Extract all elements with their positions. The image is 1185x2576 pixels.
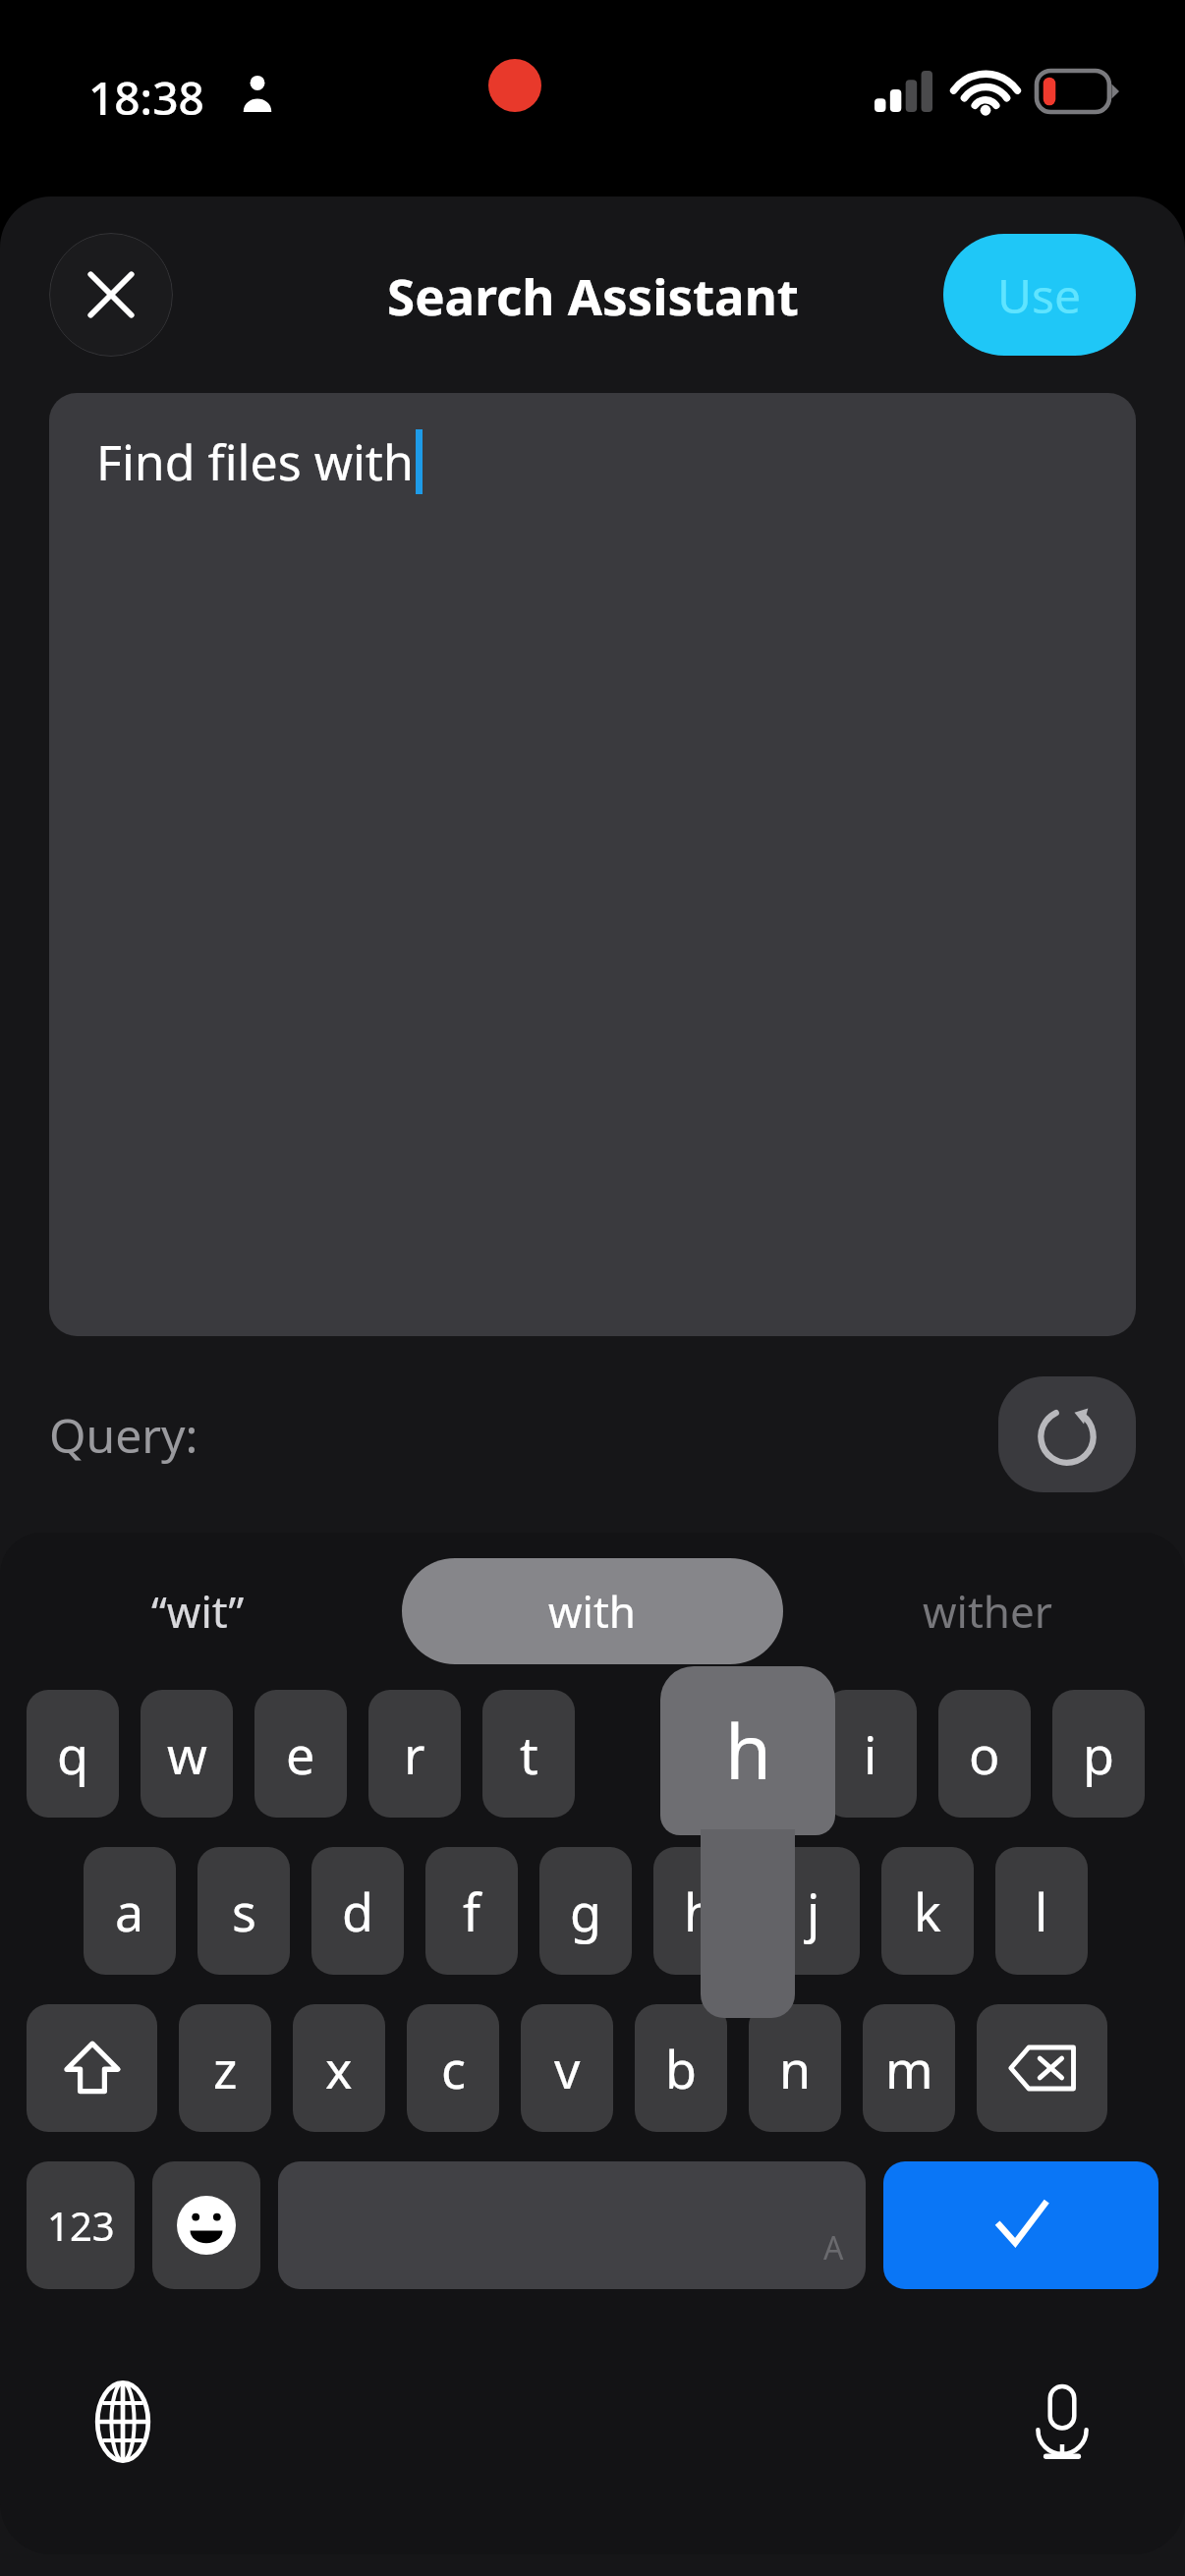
staticText: h xyxy=(684,1876,716,1946)
button[interactable]: s xyxy=(197,1847,290,1975)
button[interactable]: j xyxy=(767,1847,860,1975)
button[interactable]: Use xyxy=(943,234,1136,356)
button[interactable]: p xyxy=(1052,1690,1145,1818)
staticText: “wit” xyxy=(151,1582,245,1641)
button[interactable]: i xyxy=(824,1690,917,1818)
button[interactable]: 123 xyxy=(27,2161,135,2289)
staticText: b xyxy=(665,2034,697,2103)
staticText: f xyxy=(463,1876,480,1946)
button[interactable]: Emoji xyxy=(152,2161,260,2289)
staticText: d xyxy=(342,1876,373,1946)
button[interactable] xyxy=(596,1690,689,1818)
button[interactable]: “wit” xyxy=(0,1533,395,1690)
staticText: Query: xyxy=(49,1403,198,1467)
button[interactable]: Change language xyxy=(69,2368,177,2476)
button[interactable]: r xyxy=(368,1690,461,1818)
staticText: e xyxy=(286,1719,315,1789)
staticText: 18:38 xyxy=(88,67,204,129)
staticText: s xyxy=(232,1876,256,1946)
staticText: l xyxy=(1035,1876,1048,1946)
staticText: x xyxy=(325,2034,353,2103)
button[interactable]: z xyxy=(179,2004,271,2132)
button[interactable]: n xyxy=(749,2004,841,2132)
staticText: i xyxy=(864,1719,877,1789)
button[interactable]: x xyxy=(293,2004,385,2132)
button[interactable]: Key xyxy=(977,2004,1107,2132)
staticText: w xyxy=(167,1719,207,1789)
button[interactable]: Enter xyxy=(883,2161,1158,2289)
button[interactable]: Find files with xyxy=(49,393,1136,1336)
staticText: m xyxy=(885,2034,933,2103)
button[interactable]: Key xyxy=(27,2004,157,2132)
staticText: g xyxy=(570,1876,601,1946)
staticText: z xyxy=(213,2034,238,2103)
staticText: Find files with xyxy=(96,428,414,495)
button[interactable]: Space xyxy=(278,2161,866,2289)
staticText: n xyxy=(779,2034,812,2103)
button[interactable]: a xyxy=(84,1847,176,1975)
button[interactable]: o xyxy=(938,1690,1031,1818)
button[interactable]: l xyxy=(995,1847,1088,1975)
button[interactable]: g xyxy=(539,1847,632,1975)
button[interactable]: k xyxy=(881,1847,974,1975)
staticText: with xyxy=(548,1582,637,1641)
button[interactable]: b xyxy=(635,2004,727,2132)
button[interactable]: c xyxy=(407,2004,499,2132)
staticText: r xyxy=(404,1719,425,1789)
button[interactable]: q xyxy=(27,1690,119,1818)
staticText: q xyxy=(57,1719,88,1789)
button[interactable]: m xyxy=(863,2004,955,2132)
staticText: h xyxy=(725,1700,771,1802)
button[interactable]: h xyxy=(653,1847,746,1975)
button[interactable]: Voice input xyxy=(1008,2368,1116,2476)
staticText: a xyxy=(115,1876,144,1946)
button[interactable]: wither xyxy=(790,1533,1185,1690)
button[interactable]: f xyxy=(425,1847,518,1975)
button[interactable]: Close xyxy=(49,233,173,357)
staticText: 123 xyxy=(47,2199,115,2252)
staticText: j xyxy=(807,1876,820,1946)
button[interactable]: v xyxy=(521,2004,613,2132)
staticText: A xyxy=(823,2226,844,2269)
staticText: c xyxy=(441,2034,466,2103)
staticText: k xyxy=(914,1876,941,1946)
button[interactable]: u xyxy=(710,1690,803,1818)
staticText: o xyxy=(969,1719,1000,1789)
button[interactable]: w xyxy=(141,1690,233,1818)
button[interactable]: d xyxy=(311,1847,404,1975)
staticText: Use xyxy=(997,263,1082,327)
staticText: wither xyxy=(923,1582,1052,1641)
button[interactable]: t xyxy=(482,1690,575,1818)
staticText: t xyxy=(520,1719,538,1789)
staticText: v xyxy=(554,2034,581,2103)
staticText: u xyxy=(741,1719,773,1789)
button[interactable]: e xyxy=(254,1690,347,1818)
button[interactable]: with xyxy=(402,1558,783,1664)
staticText: Search Assistant xyxy=(387,261,799,329)
staticText: p xyxy=(1083,1719,1114,1789)
button[interactable]: Regenerate xyxy=(998,1376,1136,1492)
